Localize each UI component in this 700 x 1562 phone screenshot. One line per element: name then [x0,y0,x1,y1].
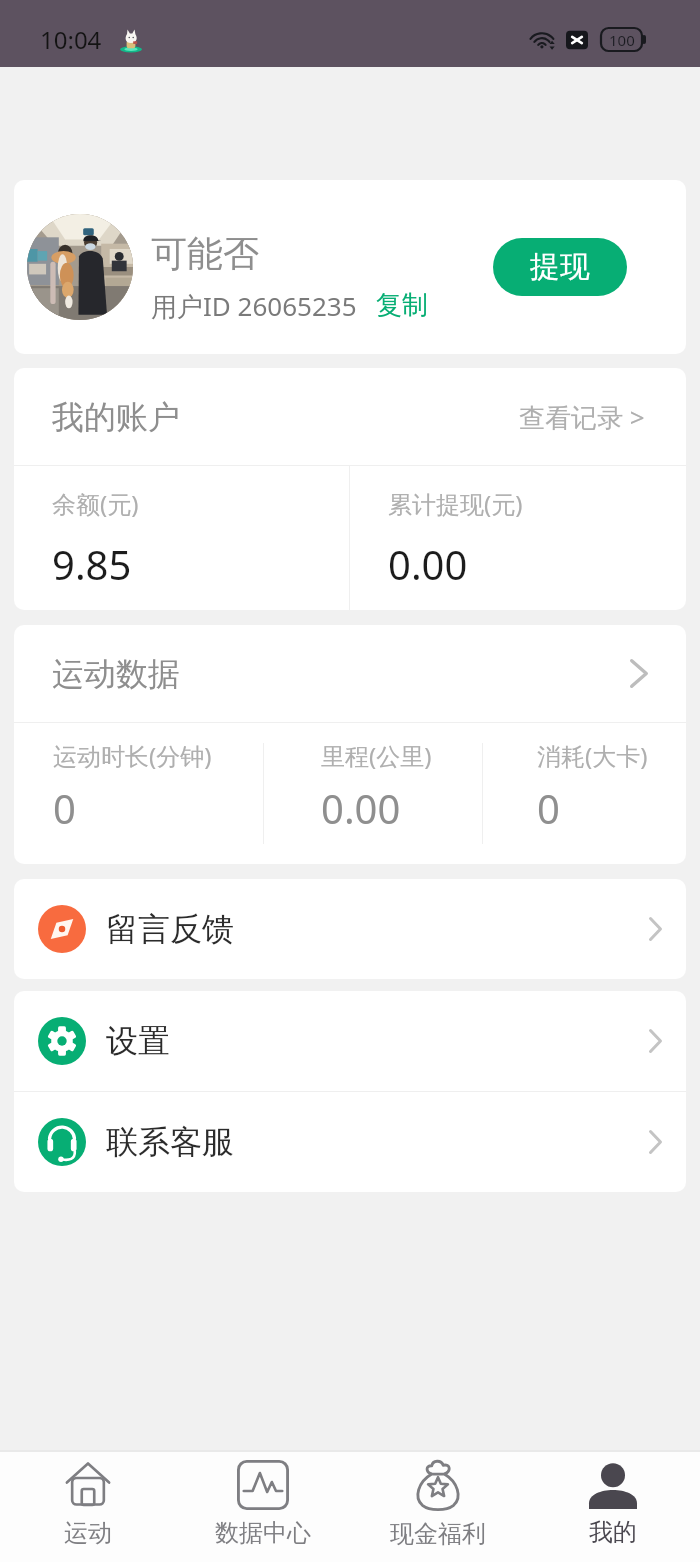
staticText: 运动 [64,1518,112,1548]
staticText: 运动数据 [52,654,180,694]
button[interactable]: Sports [0,1452,175,1562]
button[interactable]: 提现 [493,238,627,296]
staticText: 设置 [106,1021,170,1061]
staticText: 里程(公里) [321,739,432,772]
staticText: 复制 [376,289,428,322]
staticText: 余额(元) [52,487,139,520]
staticText: 现金福利 [390,1519,486,1549]
staticText: 10:04 [40,23,102,56]
staticText: 我的 [589,1517,637,1547]
staticText: 留言反馈 [106,909,234,949]
staticText: 提现 [530,248,590,286]
button[interactable]: 留言反馈 [38,879,662,979]
staticText: 0 [537,781,560,835]
staticText: 0.00 [321,781,401,835]
staticText: 联系客服 [106,1122,234,1162]
staticText: 100 [609,30,635,50]
staticText: 消耗(大卡) [537,739,648,772]
staticText: 数据中心 [215,1518,311,1548]
staticText: 0 [53,781,76,835]
staticText: 累计提现(元) [388,487,523,520]
staticText: 用户ID 26065235 [151,288,357,324]
button[interactable]: Profile [525,1452,700,1562]
button[interactable]: 我的账户 [52,368,645,465]
button[interactable]: Cash rewards [350,1452,525,1562]
staticText: 我的账户 [52,397,180,437]
button[interactable]: 运动数据 [52,625,648,722]
button[interactable]: 联系客服 [38,1092,662,1192]
staticText: 查看记录 > [519,399,645,435]
staticText: 9.85 [52,537,132,591]
button[interactable]: 设置 [38,991,662,1091]
staticText: 可能否 [151,231,259,276]
button[interactable]: 复制 [374,287,430,324]
button[interactable]: Data center [175,1452,350,1562]
staticText: 0.00 [388,537,468,591]
staticText: 运动时长(分钟) [53,739,212,772]
